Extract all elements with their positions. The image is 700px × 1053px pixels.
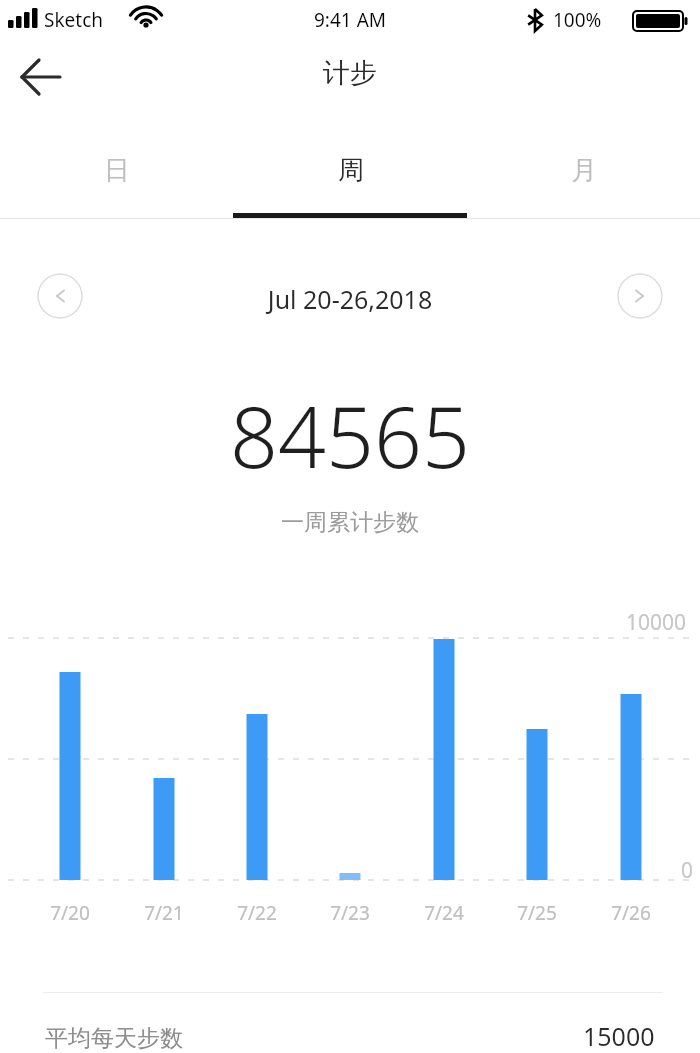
staticText: Jul 20-26,2018 <box>0 282 700 316</box>
button[interactable]: Previous week <box>37 273 83 319</box>
staticText: 一周累计步数 <box>281 508 419 537</box>
staticText: 10000 <box>626 608 687 637</box>
staticText: 7/20 <box>43 900 97 926</box>
button[interactable]: 月 <box>467 130 700 218</box>
button[interactable]: 周 <box>234 130 467 218</box>
staticText: 0 <box>681 856 694 885</box>
staticText: 7/24 <box>417 900 471 926</box>
staticText: 84565 <box>230 378 470 492</box>
staticText: 计步 <box>0 56 700 90</box>
button[interactable]: 平均每天步数 <box>0 992 700 1053</box>
button[interactable]: 日 <box>0 130 234 218</box>
staticText: 7/25 <box>510 900 564 926</box>
button[interactable]: Back <box>10 46 72 108</box>
button[interactable]: Next week <box>617 273 663 319</box>
staticText: 平均每天步数 <box>45 1024 583 1053</box>
staticText: 15000 <box>583 1019 655 1053</box>
staticText: 7/26 <box>604 900 658 926</box>
staticText: 7/22 <box>230 900 284 926</box>
staticText: 7/23 <box>323 900 377 926</box>
staticText: Sketch <box>44 7 104 33</box>
staticText: 9:41 AM <box>0 7 700 33</box>
staticText: 周 <box>338 154 364 187</box>
staticText: 7/21 <box>137 900 191 926</box>
staticText: 月 <box>571 154 597 187</box>
staticText: 100% <box>553 7 602 33</box>
staticText: 日 <box>104 154 130 187</box>
